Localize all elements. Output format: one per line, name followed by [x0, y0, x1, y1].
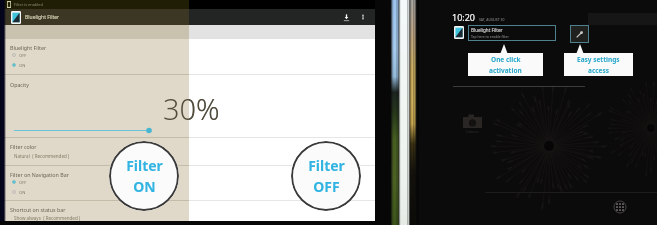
staticText: SAT, AUGUST 30 [479, 17, 505, 22]
staticText: Natural ( Recommended ) [14, 153, 70, 159]
staticText: activation [489, 66, 522, 75]
staticText: Filter is enabled [14, 2, 43, 7]
button[interactable]: More options [357, 11, 369, 23]
button[interactable]: ON [12, 190, 52, 194]
button[interactable]: Filter on Navigation Bar [10, 171, 199, 179]
button[interactable]: Opacity [10, 81, 199, 89]
staticText: OFF [19, 53, 27, 57]
staticText: Shortcut on status bar [10, 206, 66, 213]
button[interactable]: ON [12, 63, 52, 67]
button[interactable] [12, 127, 152, 134]
staticText: Bluelight Filter [25, 14, 60, 21]
button[interactable]: Bluelight Filter [10, 44, 199, 52]
button[interactable]: Filter color [10, 143, 199, 151]
button[interactable]: ON [12, 190, 52, 194]
staticText: Opacity [10, 81, 29, 88]
button[interactable]: OFF [12, 53, 52, 57]
staticText: Bluelight Filter [10, 44, 47, 51]
staticText: Filter is enabled [14, 2, 43, 7]
staticText: Shortcut on status bar [10, 206, 66, 213]
staticText: OFF [19, 53, 27, 57]
button[interactable]: OFF [12, 180, 52, 184]
button[interactable]: Bluelight Filter [468, 25, 556, 41]
button[interactable]: Download [339, 10, 353, 24]
staticText: Filter color [10, 143, 37, 150]
staticText: Filter [126, 156, 163, 175]
staticText: Bluelight Filter [25, 14, 60, 21]
button[interactable]: OFF [12, 53, 52, 57]
button[interactable]: OFF [12, 180, 52, 184]
staticText: 30% [163, 89, 220, 128]
staticText: Opacity [10, 81, 29, 88]
staticText: One click [491, 55, 521, 64]
staticText: ON [19, 63, 26, 67]
staticText: Filter color [10, 143, 37, 150]
button[interactable]: Opacity [10, 81, 385, 89]
button[interactable]: Bluelight Filter [10, 44, 385, 52]
button[interactable]: Shortcut on status bar [10, 206, 385, 214]
staticText: Filter on Navigation Bar [10, 171, 69, 178]
button[interactable] [12, 127, 152, 134]
staticText: 30% [163, 89, 220, 128]
staticText: OFF [313, 177, 340, 196]
staticText: Show always ( Recommended ) [14, 215, 81, 221]
staticText: ON [133, 177, 156, 196]
staticText: ON [19, 63, 26, 67]
staticText: ON [19, 190, 26, 194]
staticText: 10:20 [452, 11, 476, 23]
staticText: Tap here to enable filter [471, 34, 509, 39]
staticText: OFF [19, 180, 27, 184]
button[interactable]: Apps [613, 200, 627, 214]
button[interactable]: Filter [109, 141, 179, 211]
staticText: Filter [308, 156, 345, 175]
staticText: Easy settings [577, 55, 620, 64]
staticText: ON [19, 190, 26, 194]
staticText: access [588, 66, 610, 75]
staticText: Natural ( Recommended ) [14, 153, 70, 159]
button[interactable]: ON [12, 63, 52, 67]
button[interactable]: Filter color [10, 143, 385, 151]
button[interactable]: Filter on Navigation Bar [10, 171, 385, 179]
staticText: Filter on Navigation Bar [10, 171, 69, 178]
staticText: OFF [19, 180, 27, 184]
button[interactable]: Shortcut on status bar [10, 206, 199, 214]
staticText: Bluelight Filter [10, 44, 47, 51]
button[interactable]: Filter [291, 141, 361, 211]
button[interactable]: Settings [570, 25, 589, 43]
staticText: Show always ( Recommended ) [14, 215, 81, 221]
staticText: Bluelight Filter [471, 27, 503, 33]
staticText: Camera [466, 129, 479, 134]
